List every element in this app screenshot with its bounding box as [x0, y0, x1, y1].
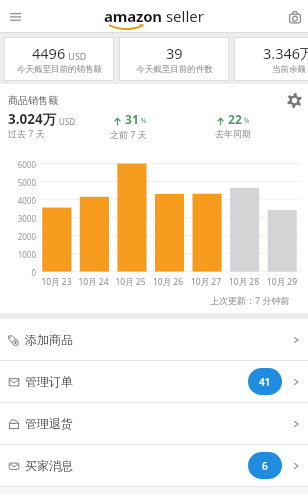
- staticText: 5000: [2, 177, 36, 188]
- staticText: seller: [162, 6, 204, 26]
- staticText: 10月 25: [112, 276, 149, 288]
- staticText: 39: [166, 43, 183, 63]
- staticText: 过去 7 天: [8, 127, 45, 139]
- staticText: 商品销售额: [8, 94, 58, 107]
- staticText: %: [242, 116, 250, 126]
- staticText: 3000: [2, 213, 36, 224]
- staticText: 2000: [2, 231, 36, 242]
- staticText: 10月 29: [263, 276, 301, 288]
- staticText: 41: [259, 375, 271, 389]
- staticText: 0: [2, 267, 36, 278]
- staticText: 管理退货: [25, 416, 73, 431]
- staticText: 10月 26: [149, 276, 187, 288]
- button[interactable]: 管理订单: [0, 361, 308, 402]
- staticText: 10月 24: [75, 276, 112, 288]
- staticText: 今天截至目前的件数: [136, 64, 213, 75]
- button[interactable]: 3.346万: [234, 37, 308, 81]
- staticText: 3.024万: [8, 110, 57, 128]
- button[interactable]: 添加商品: [0, 319, 308, 360]
- staticText: USD: [57, 116, 76, 127]
- staticText: amazon: [104, 6, 162, 26]
- staticText: 管理订单: [25, 374, 73, 389]
- staticText: 10月 23: [38, 276, 75, 288]
- staticText: 添加商品: [25, 332, 73, 347]
- staticText: 今天截至目前的销售额: [17, 64, 102, 75]
- staticText: 22: [225, 111, 242, 127]
- button[interactable]: Chart settings: [286, 92, 302, 108]
- staticText: 之前 7 天: [110, 128, 147, 140]
- staticText: 3.346万: [263, 43, 308, 63]
- staticText: 1000: [2, 249, 36, 260]
- button[interactable]: 管理退货: [0, 403, 308, 444]
- staticText: 6: [262, 459, 268, 473]
- staticText: USD: [66, 50, 87, 62]
- staticText: 当前余额: [272, 64, 306, 75]
- staticText: 上次更新：7 分钟前: [210, 294, 290, 306]
- staticText: %: [139, 116, 147, 126]
- button[interactable]: 买家消息: [0, 445, 308, 486]
- button[interactable]: Camera: [283, 0, 307, 33]
- button[interactable]: Menu: [0, 0, 31, 33]
- staticText: 去年同期: [215, 128, 251, 139]
- staticText: 10月 28: [225, 276, 263, 288]
- button[interactable]: 4496: [4, 37, 114, 81]
- staticText: 10月 27: [187, 276, 225, 288]
- staticText: 4000: [2, 195, 36, 206]
- button[interactable]: 39: [119, 37, 229, 81]
- staticText: 31: [122, 111, 139, 127]
- staticText: 4496: [32, 43, 66, 63]
- staticText: 6000: [2, 159, 36, 170]
- staticText: 买家消息: [25, 458, 73, 473]
